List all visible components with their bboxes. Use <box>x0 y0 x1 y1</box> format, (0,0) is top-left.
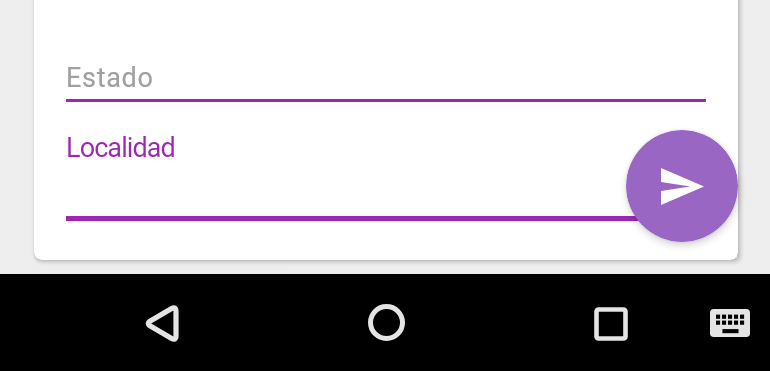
button[interactable]: Send <box>626 130 738 242</box>
button[interactable]: Keyboard <box>690 274 770 371</box>
staticText: Localidad <box>66 132 175 164</box>
button[interactable]: Back <box>81 275 241 371</box>
button[interactable]: Recent apps <box>531 275 691 371</box>
button[interactable]: Estado <box>66 50 706 102</box>
button[interactable]: Localidad <box>66 120 706 221</box>
button[interactable]: Home <box>306 274 466 371</box>
staticText: Estado <box>66 62 154 94</box>
